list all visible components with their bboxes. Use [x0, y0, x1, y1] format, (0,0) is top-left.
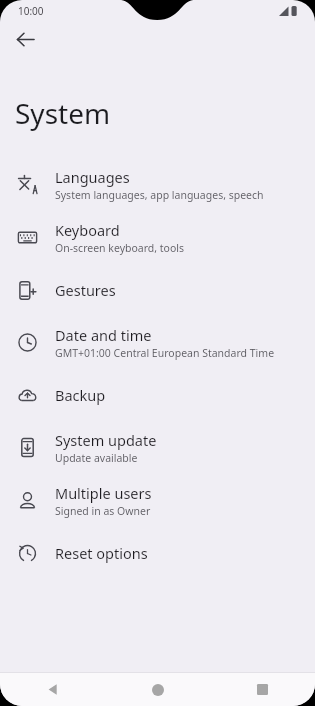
button[interactable]: Gestures: [0, 264, 315, 316]
staticText: Backup: [55, 385, 106, 405]
staticText: System: [15, 94, 111, 132]
button[interactable]: Home: [105, 673, 210, 706]
staticText: Signed in as Owner: [55, 504, 151, 518]
staticText: Keyboard: [55, 220, 120, 240]
staticText: Multiple users: [55, 483, 152, 503]
button[interactable]: Recent apps: [210, 673, 315, 706]
staticText: Languages: [55, 167, 130, 187]
staticText: Reset options: [55, 543, 148, 563]
button[interactable]: Languages: [0, 158, 315, 211]
button[interactable]: Date and time: [0, 316, 315, 369]
staticText: Update available: [55, 451, 138, 465]
button[interactable]: Reset options: [0, 527, 315, 579]
staticText: GMT+01:00 Central European Standard Time: [55, 346, 275, 360]
staticText: System languages, app languages, speech: [55, 188, 264, 202]
button[interactable]: System update: [0, 421, 315, 474]
staticText: On-screen keyboard, tools: [55, 241, 185, 255]
staticText: System update: [55, 430, 157, 450]
staticText: Gestures: [55, 280, 116, 300]
staticText: 10:00: [18, 4, 44, 18]
button[interactable]: Back: [0, 673, 105, 706]
button[interactable]: Keyboard: [0, 211, 315, 264]
staticText: Date and time: [55, 325, 152, 345]
button[interactable]: Back: [8, 22, 42, 56]
button[interactable]: Backup: [0, 369, 315, 421]
button[interactable]: Multiple users: [0, 474, 315, 527]
